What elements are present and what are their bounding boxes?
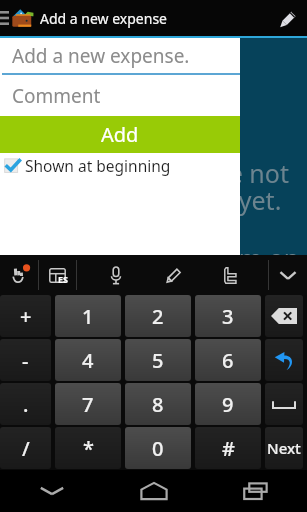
staticText: 7 — [82, 391, 94, 418]
staticText: * — [83, 435, 94, 462]
staticText: # — [222, 435, 235, 462]
button[interactable]: Clipboard — [193, 255, 268, 295]
button[interactable]: Voice input — [77, 255, 154, 295]
button[interactable]: 0 — [125, 427, 191, 469]
button[interactable]: space — [265, 383, 303, 425]
button[interactable]: Shown at beginning — [4, 153, 240, 177]
staticText: / — [22, 435, 30, 462]
staticText: 5 — [152, 347, 164, 374]
staticText: 8 — [152, 391, 164, 418]
button[interactable]: 4 — [55, 339, 121, 381]
staticText: ES — [58, 273, 68, 285]
button[interactable]: . — [0, 383, 51, 425]
button[interactable]: Open navigation drawer — [0, 0, 34, 36]
button[interactable]: bksp — [265, 295, 303, 337]
button[interactable]: Recents — [205, 470, 307, 512]
staticText: 3 — [222, 303, 234, 330]
button[interactable]: Next — [265, 427, 303, 469]
button[interactable]: 9 — [195, 383, 261, 425]
button[interactable]: # — [195, 427, 261, 469]
staticText: Add a new expense. — [12, 43, 190, 69]
staticText: Shown at beginning — [25, 155, 171, 176]
button[interactable]: 7 — [55, 383, 121, 425]
button[interactable]: Back — [0, 470, 103, 512]
button[interactable]: * — [55, 427, 121, 469]
button[interactable]: Draw — [154, 255, 193, 295]
button[interactable]: 2 — [125, 295, 191, 337]
staticText: Add — [101, 121, 139, 148]
button[interactable]: Handwriting input — [0, 255, 38, 295]
staticText: Next — [267, 438, 301, 458]
staticText: 6 — [222, 347, 234, 374]
button[interactable]: Hide keyboard — [269, 255, 307, 295]
staticText: 2 — [152, 303, 164, 330]
button[interactable]: Edit — [271, 0, 307, 36]
button[interactable]: 8 — [125, 383, 191, 425]
staticText: - — [22, 347, 29, 374]
button[interactable]: 1 — [55, 295, 121, 337]
button[interactable]: 3 — [195, 295, 261, 337]
button[interactable]: / — [0, 427, 51, 469]
staticText: There are not — [131, 156, 289, 190]
staticText: + — [20, 303, 32, 330]
staticText: Add a new expense — [40, 9, 167, 28]
staticText: Comment — [12, 83, 101, 109]
button[interactable]: - — [0, 339, 51, 381]
staticText: 4 — [82, 347, 94, 374]
button[interactable]: enter — [265, 339, 303, 381]
button[interactable]: Home — [103, 470, 205, 512]
button[interactable]: 5 — [125, 339, 191, 381]
button[interactable]: 6 — [195, 339, 261, 381]
staticText: . — [23, 391, 29, 418]
staticText: added yet. — [158, 183, 282, 217]
staticText: 9 — [222, 391, 234, 418]
button[interactable]: Add — [0, 116, 240, 153]
button[interactable]: Switch input method — [39, 255, 76, 295]
staticText: 1 — [82, 303, 94, 330]
staticText: You can add them on — [51, 241, 300, 275]
staticText: 0 — [152, 435, 164, 462]
button[interactable]: + — [0, 295, 51, 337]
